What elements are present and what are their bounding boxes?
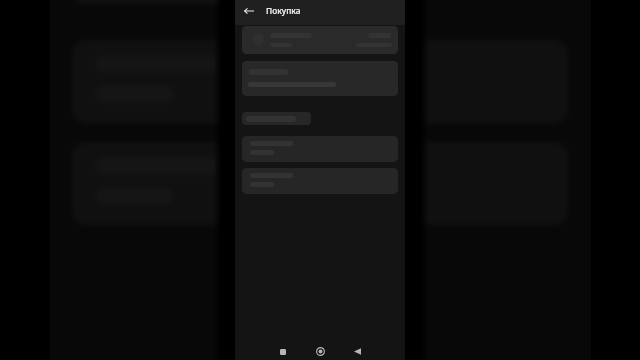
button[interactable]: Home	[310, 343, 330, 360]
button[interactable]	[242, 26, 398, 54]
button[interactable]: Recent apps	[273, 343, 293, 360]
button[interactable]	[242, 168, 398, 194]
staticText: Покупка	[266, 5, 301, 16]
button[interactable]: Back	[241, 3, 257, 19]
button[interactable]: Back	[347, 343, 367, 360]
button[interactable]	[72, 0, 291, 4]
button[interactable]	[72, 40, 568, 123]
button[interactable]	[242, 136, 398, 162]
button[interactable]	[242, 61, 398, 96]
button[interactable]	[242, 112, 311, 125]
button[interactable]	[72, 142, 568, 225]
